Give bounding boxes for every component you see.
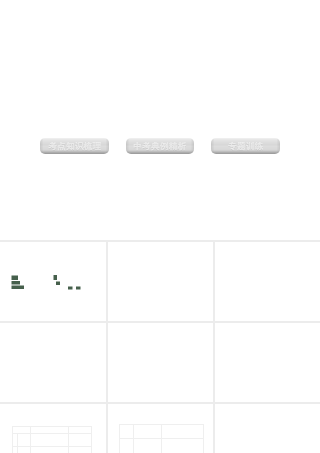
button[interactable]: 中考典例精析 [126,138,194,154]
button[interactable]: 考点知识梳理 [40,138,109,154]
staticText: 中考典例精析 [133,142,187,153]
staticText: 考点知识梳理 [48,141,102,152]
staticText: 专题训练 [228,141,264,152]
staticText: 中考典例精析 [133,141,187,152]
staticText: 考点知识梳理 [48,142,102,153]
button[interactable]: 专题训练 [211,138,280,154]
staticText: 专题训练 [228,142,264,153]
other: Page thumbnail grid [0,0,320,453]
